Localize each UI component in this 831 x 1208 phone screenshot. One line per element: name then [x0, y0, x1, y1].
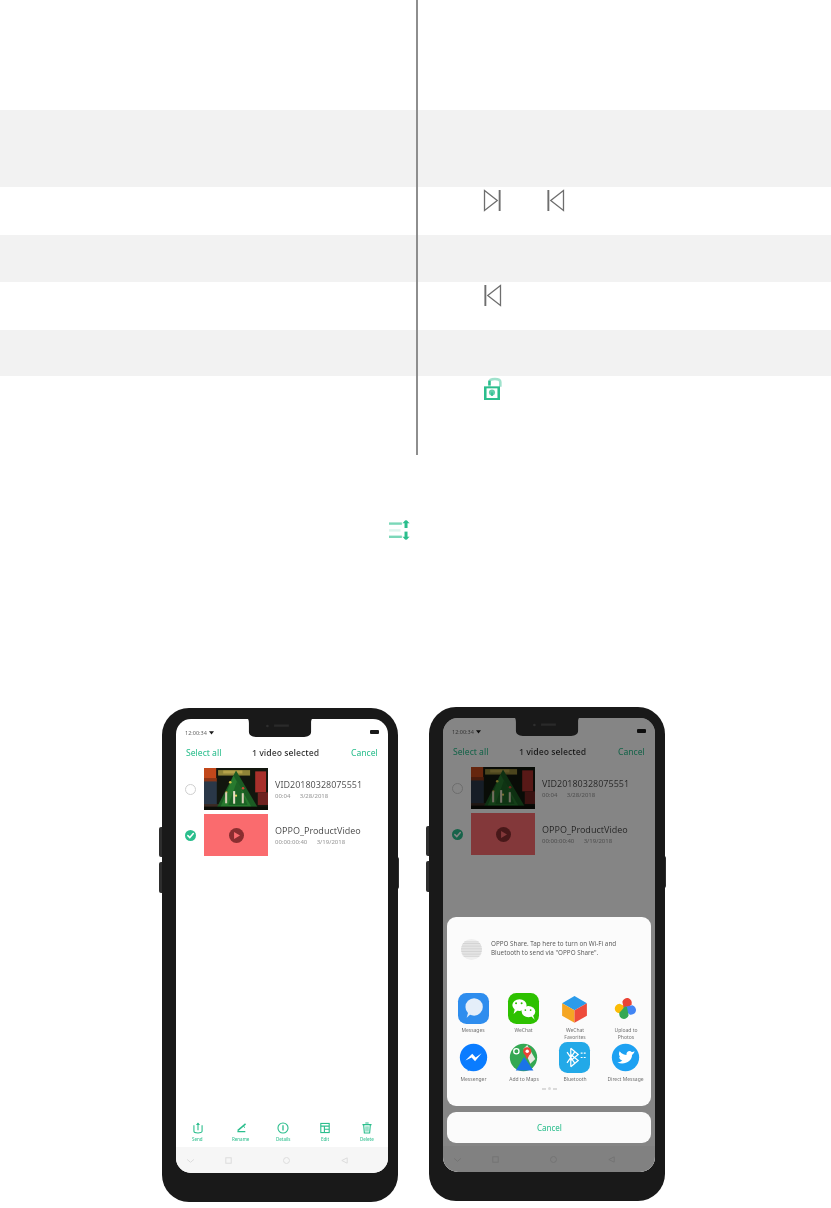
- button[interactable]: Sort: [389, 520, 412, 540]
- staticText: Edit: [321, 1136, 330, 1142]
- button[interactable]: Bluetooth: [549, 1042, 600, 1083]
- button[interactable]: Skip previous: [484, 285, 501, 306]
- button[interactable]: Select all: [184, 745, 224, 761]
- staticText: 1 video selected: [519, 746, 587, 758]
- button[interactable]: VID20180328075551: [176, 768, 388, 810]
- button[interactable]: Add to Maps: [498, 1042, 549, 1083]
- staticText: Send: [192, 1136, 203, 1142]
- button[interactable]: OPPO_ProductVideo: [176, 814, 388, 856]
- staticText: WeChat Favorites: [564, 1027, 586, 1041]
- staticText: WeChat: [514, 1027, 533, 1034]
- staticText: Upload to Photos: [614, 1027, 638, 1041]
- button[interactable]: Details: [529, 1120, 571, 1146]
- button[interactable]: WeChat: [498, 993, 549, 1034]
- staticText: 1 video selected: [252, 747, 320, 759]
- button[interactable]: Edit: [304, 1121, 346, 1147]
- button[interactable]: Edit: [571, 1120, 613, 1146]
- button[interactable]: Messages: [448, 993, 498, 1034]
- button[interactable]: Send: [176, 1121, 219, 1147]
- button[interactable]: Unlock: [484, 378, 500, 400]
- button[interactable]: Send: [443, 1120, 486, 1146]
- button[interactable]: VID20180328075551: [443, 767, 655, 809]
- staticText: 00:04 3/28/2018: [542, 791, 596, 799]
- staticText: OPPO Share. Tap here to turn on Wi-Fi an…: [491, 939, 641, 957]
- button[interactable]: Direct Message: [600, 1042, 651, 1083]
- button[interactable]: Collapse: [180, 1147, 200, 1173]
- button[interactable]: Collapse: [447, 1146, 467, 1172]
- staticText: 00:00:00:40 3/19/2018: [542, 837, 613, 845]
- button[interactable]: Rename: [219, 1121, 262, 1147]
- staticText: Messenger: [460, 1076, 487, 1083]
- staticText: Messages: [461, 1027, 485, 1034]
- staticText: 12:00:34: [452, 728, 474, 735]
- staticText: Cancel: [618, 746, 645, 758]
- staticText: Bluetooth: [563, 1076, 587, 1083]
- staticText: 12:00:34: [185, 729, 207, 736]
- staticText: Rename: [232, 1136, 250, 1142]
- button[interactable]: WeChat Favorites: [549, 993, 600, 1041]
- staticText: Add to Maps: [509, 1076, 539, 1083]
- button[interactable]: Details: [262, 1121, 304, 1147]
- staticText: Cancel: [537, 1122, 562, 1133]
- staticText: 00:00:00:40 3/19/2018: [275, 838, 346, 846]
- staticText: Direct Message: [607, 1076, 644, 1083]
- staticText: OPPO_ProductVideo: [542, 823, 628, 835]
- staticText: Cancel: [351, 747, 378, 759]
- staticText: Details: [276, 1136, 291, 1142]
- staticText: Delete: [360, 1136, 374, 1142]
- staticText: Select all: [186, 747, 222, 759]
- button[interactable]: OPPO_ProductVideo: [443, 813, 655, 855]
- button[interactable]: Rename: [486, 1120, 529, 1146]
- button[interactable]: Cancel: [447, 1112, 651, 1143]
- staticText: OPPO_ProductVideo: [275, 824, 361, 836]
- button[interactable]: Skip next: [484, 190, 501, 211]
- button[interactable]: Upload to Photos: [600, 993, 651, 1041]
- button[interactable]: Recents: [218, 1147, 238, 1173]
- button[interactable]: Home: [276, 1147, 296, 1173]
- staticText: VID20180328075551: [542, 777, 630, 789]
- button[interactable]: Cancel: [616, 744, 647, 760]
- button[interactable]: Delete: [346, 1121, 388, 1147]
- staticText: 00:04 3/28/2018: [275, 792, 329, 800]
- button[interactable]: Back: [334, 1147, 354, 1173]
- button[interactable]: Messenger: [448, 1042, 498, 1083]
- button[interactable]: Select all: [451, 744, 491, 760]
- button[interactable]: Skip previous: [547, 190, 564, 211]
- staticText: VID20180328075551: [275, 778, 363, 790]
- staticText: Select all: [453, 746, 489, 758]
- button[interactable]: Delete: [613, 1120, 655, 1146]
- button[interactable]: Cancel: [349, 745, 380, 761]
